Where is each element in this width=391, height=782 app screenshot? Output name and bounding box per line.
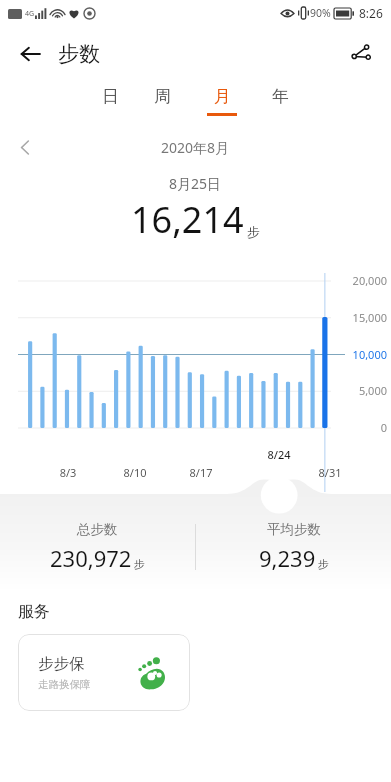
staticText: 日 [102, 86, 119, 107]
staticText: 8/31 [316, 465, 344, 480]
staticText: 周 [154, 86, 171, 107]
staticText: 步数 [58, 41, 100, 67]
staticText: 20,000 [333, 273, 387, 288]
staticText: 8:26 [359, 5, 383, 21]
staticText: 90% [310, 6, 331, 20]
staticText: 230,972 [50, 543, 132, 573]
button[interactable]: 日 [96, 82, 125, 120]
staticText: 8/10 [121, 465, 149, 480]
staticText: 平均步数 [267, 521, 321, 538]
button[interactable]: Back [10, 34, 50, 74]
staticText: 总步数 [77, 521, 118, 538]
button[interactable]: 步步保 [18, 634, 190, 711]
staticText: 9,239 [259, 543, 316, 573]
button[interactable]: 平均步数 [196, 521, 391, 573]
staticText: 步 [247, 224, 260, 240]
button[interactable]: Share [341, 34, 381, 74]
button[interactable]: 年 [266, 82, 295, 120]
staticText: 服务 [18, 602, 50, 622]
staticText: 8/24 [263, 447, 295, 462]
staticText: 5,000 [333, 383, 387, 398]
staticText: 8/3 [54, 465, 82, 480]
staticText: 4G [25, 9, 35, 19]
staticText: 16,214 [131, 195, 244, 244]
staticText: 步步保 [38, 654, 85, 674]
staticText: 年 [272, 86, 289, 107]
staticText: 8/17 [187, 465, 215, 480]
staticText: 走路换保障 [38, 678, 91, 691]
staticText: 2020年8月 [161, 138, 230, 157]
button[interactable]: Previous month [12, 134, 38, 160]
button[interactable]: 周 [148, 82, 177, 120]
staticText: 10,000 [333, 347, 387, 362]
staticText: 8月25日 [169, 174, 222, 193]
staticText: 步 [318, 557, 329, 571]
button[interactable]: 总步数 [0, 521, 195, 573]
button[interactable]: 月 [201, 82, 243, 120]
staticText: 15,000 [333, 310, 387, 325]
staticText: 月 [214, 86, 231, 107]
staticText: 0 [333, 420, 387, 435]
staticText: 步 [134, 557, 145, 571]
